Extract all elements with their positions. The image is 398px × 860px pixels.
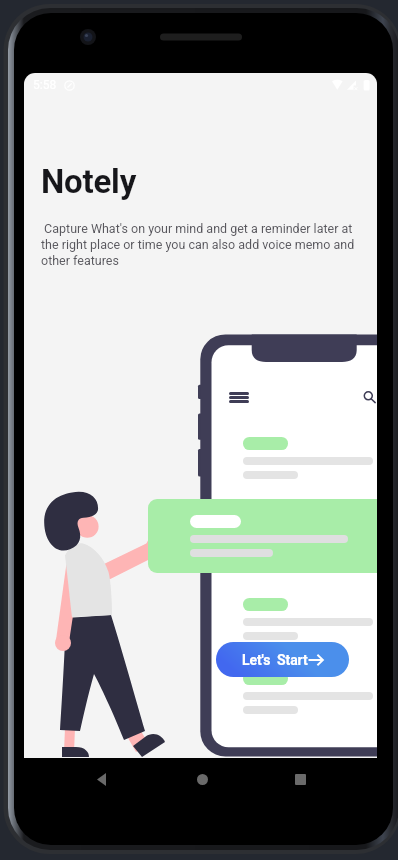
button[interactable]: Let's Start	[216, 642, 349, 677]
staticText: 5:58	[33, 78, 57, 92]
button[interactable]: Back	[84, 762, 118, 796]
button[interactable]: Menu	[224, 387, 254, 408]
button[interactable]: Home	[185, 762, 219, 796]
button[interactable]: Recent apps	[283, 762, 317, 796]
staticText: Let's Start	[242, 652, 308, 668]
button[interactable]: Search	[358, 385, 377, 409]
staticText: Capture What's on your mind and get a re…	[41, 221, 367, 268]
staticText: Notely	[41, 162, 137, 201]
